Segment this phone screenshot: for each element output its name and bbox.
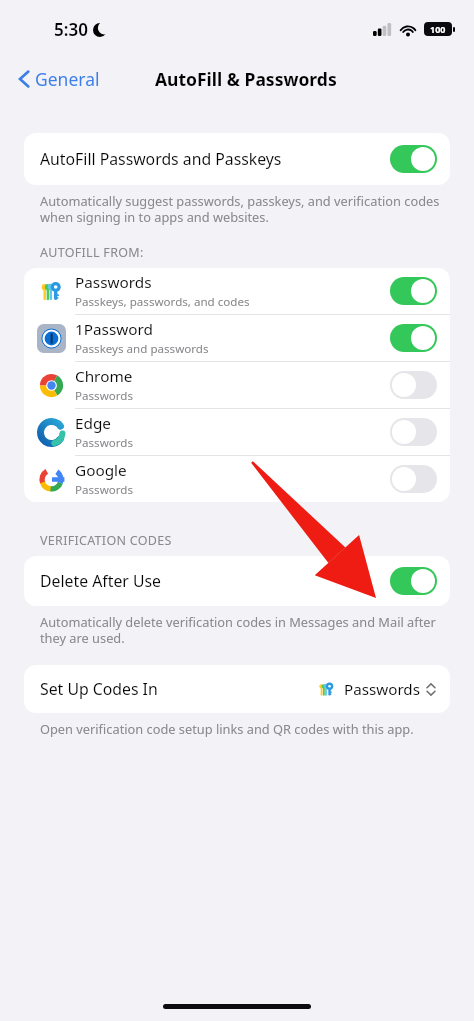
- staticText: Passwords: [75, 388, 133, 404]
- staticText: Passwords: [75, 482, 133, 498]
- staticText: 100: [430, 23, 446, 35]
- staticText: Edge: [75, 413, 111, 434]
- staticText: Automatically delete verification codes …: [40, 613, 440, 647]
- button[interactable]: Delete After Use: [24, 556, 450, 606]
- button[interactable]: 1Password: [24, 315, 450, 361]
- staticText: Chrome: [75, 366, 133, 387]
- button[interactable]: On: [390, 324, 437, 352]
- staticText: VERIFICATION CODES: [40, 532, 172, 549]
- other: Change app: [426, 681, 436, 698]
- button[interactable]: General: [14, 63, 104, 95]
- staticText: General: [35, 67, 100, 91]
- staticText: AUTOFILL FROM:: [40, 244, 144, 261]
- button[interactable]: Passwords: [24, 268, 450, 314]
- staticText: 5:30: [54, 18, 88, 41]
- staticText: Open verification code setup links and Q…: [40, 720, 414, 737]
- button[interactable]: On: [390, 145, 437, 173]
- button[interactable]: On: [390, 567, 437, 595]
- staticText: Passwords: [75, 435, 133, 451]
- button[interactable]: Off: [390, 371, 437, 399]
- button[interactable]: AutoFill Passwords and Passkeys: [24, 133, 450, 185]
- staticText: Passwords: [75, 272, 152, 293]
- button[interactable]: Google: [24, 456, 450, 502]
- staticText: 1Password: [75, 319, 153, 340]
- button[interactable]: Off: [390, 418, 437, 446]
- staticText: Passkeys, passwords, and codes: [75, 294, 250, 310]
- button[interactable]: Set Up Codes In: [24, 665, 450, 713]
- button[interactable]: Off: [390, 465, 437, 493]
- staticText: Passwords: [344, 679, 420, 700]
- staticText: Set Up Codes In: [40, 678, 316, 700]
- staticText: Delete After Use: [40, 570, 390, 592]
- button[interactable]: On: [390, 277, 437, 305]
- staticText: Passkeys and passwords: [75, 341, 209, 357]
- button[interactable]: Chrome: [24, 362, 450, 408]
- staticText: Automatically suggest passwords, passkey…: [40, 192, 440, 226]
- staticText: Google: [75, 460, 127, 481]
- staticText: AutoFill Passwords and Passkeys: [40, 148, 390, 170]
- staticText: AutoFill & Passwords: [155, 67, 337, 91]
- button[interactable]: Edge: [24, 409, 450, 455]
